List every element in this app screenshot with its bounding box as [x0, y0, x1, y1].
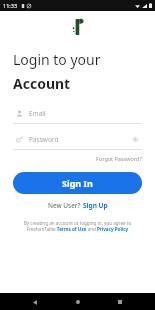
button[interactable]: Home	[71, 295, 85, 309]
button[interactable]: Recent apps	[113, 295, 127, 309]
staticText: Password	[29, 135, 59, 144]
staticText: Forgot Password?	[96, 155, 142, 162]
staticText: Login to your	[13, 50, 101, 69]
staticText: Sign In	[62, 177, 93, 189]
button[interactable]: Sign Up	[83, 201, 108, 210]
staticText: Sign Up	[83, 201, 108, 210]
button[interactable]: Forgot Password?	[13, 155, 142, 162]
button[interactable]: Sign In	[13, 172, 142, 194]
button[interactable]: Password	[13, 133, 142, 150]
staticText: New User?	[48, 201, 83, 210]
other: Show password	[129, 136, 142, 143]
staticText: By creating an account or logging in, yo…	[13, 220, 142, 233]
button[interactable]: Back	[28, 295, 42, 309]
button[interactable]: Email	[13, 107, 142, 124]
staticText: Account	[13, 74, 71, 93]
staticText: Email	[29, 109, 46, 118]
staticText: 11:33	[3, 2, 18, 9]
